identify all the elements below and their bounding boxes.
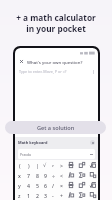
staticText: <	[60, 172, 63, 179]
staticText: in your pocket	[26, 23, 86, 34]
button[interactable]: x	[15, 170, 24, 180]
button[interactable]: -	[49, 190, 57, 200]
staticText: 3	[44, 192, 47, 199]
staticText: |	[36, 162, 39, 169]
staticText: 1	[27, 192, 30, 199]
staticText: Type to enter. Move, P or =?	[19, 69, 67, 74]
button[interactable]: 7	[24, 170, 33, 180]
staticText: (	[19, 162, 21, 169]
button[interactable]: )	[24, 160, 33, 170]
staticText: Pravda	[20, 152, 31, 157]
button[interactable]: >	[57, 160, 65, 170]
button[interactable]: 1	[24, 190, 33, 200]
staticText: ʸ	[52, 162, 54, 169]
staticText: What's your own question?	[27, 59, 83, 65]
button[interactable]: Math symbol	[76, 180, 87, 190]
button[interactable]: ×	[57, 180, 65, 190]
button[interactable]: (	[15, 160, 24, 170]
button[interactable]: Close	[19, 59, 24, 64]
button[interactable]: 5	[33, 180, 41, 190]
staticText: /	[52, 182, 54, 189]
button[interactable]: Math symbol	[76, 170, 87, 180]
button[interactable]: 6	[41, 180, 49, 190]
button[interactable]: ʸ	[49, 160, 57, 170]
button[interactable]: +	[57, 190, 65, 200]
button[interactable]: Math symbol	[87, 180, 98, 190]
staticText: 9	[44, 172, 47, 179]
staticText: Math keyboard	[18, 140, 48, 145]
button[interactable]: Math symbol	[87, 170, 98, 180]
staticText: 8	[36, 172, 39, 179]
staticText: 5	[36, 182, 39, 189]
button[interactable]: Math symbol	[76, 190, 87, 200]
staticText: 6	[44, 182, 47, 189]
button[interactable]: √	[41, 160, 49, 170]
button[interactable]: ÷	[49, 170, 57, 180]
button[interactable]: y	[15, 180, 24, 190]
button[interactable]: Math symbol	[87, 160, 98, 170]
staticText: 7	[27, 172, 30, 179]
button[interactable]: Get a solution	[5, 121, 106, 134]
staticText: y	[18, 182, 21, 189]
button[interactable]: Math symbol	[87, 190, 98, 200]
staticText: Get a solution	[37, 124, 75, 132]
button[interactable]: Pravda	[18, 149, 95, 159]
staticText: -	[52, 192, 54, 199]
button[interactable]: <	[57, 170, 65, 180]
button[interactable]: 9	[41, 170, 49, 180]
staticText: √	[43, 162, 47, 168]
button[interactable]: z	[15, 190, 24, 200]
button[interactable]: 2	[33, 190, 41, 200]
button[interactable]: 8	[33, 170, 41, 180]
staticText: 4	[27, 182, 30, 189]
staticText: z	[18, 192, 21, 199]
button[interactable]: Math symbol	[76, 160, 87, 170]
button[interactable]: Math symbol	[65, 190, 76, 200]
button[interactable]: Math symbol	[65, 160, 76, 170]
button[interactable]: Math symbol	[65, 180, 76, 190]
button[interactable]: 4	[24, 180, 33, 190]
button[interactable]: 3	[41, 190, 49, 200]
staticText: x	[18, 172, 21, 179]
button[interactable]: Math symbol	[65, 170, 76, 180]
staticText: )	[28, 162, 30, 169]
staticText: >	[60, 162, 63, 169]
staticText: ×	[60, 182, 63, 189]
staticText: ÷	[52, 172, 55, 179]
button[interactable]: Keyboard settings	[90, 140, 95, 145]
button[interactable]: /	[49, 180, 57, 190]
staticText: + a math calculator	[16, 12, 96, 23]
staticText: +	[60, 192, 63, 199]
staticText: 2	[36, 192, 39, 199]
button[interactable]: |	[33, 160, 41, 170]
